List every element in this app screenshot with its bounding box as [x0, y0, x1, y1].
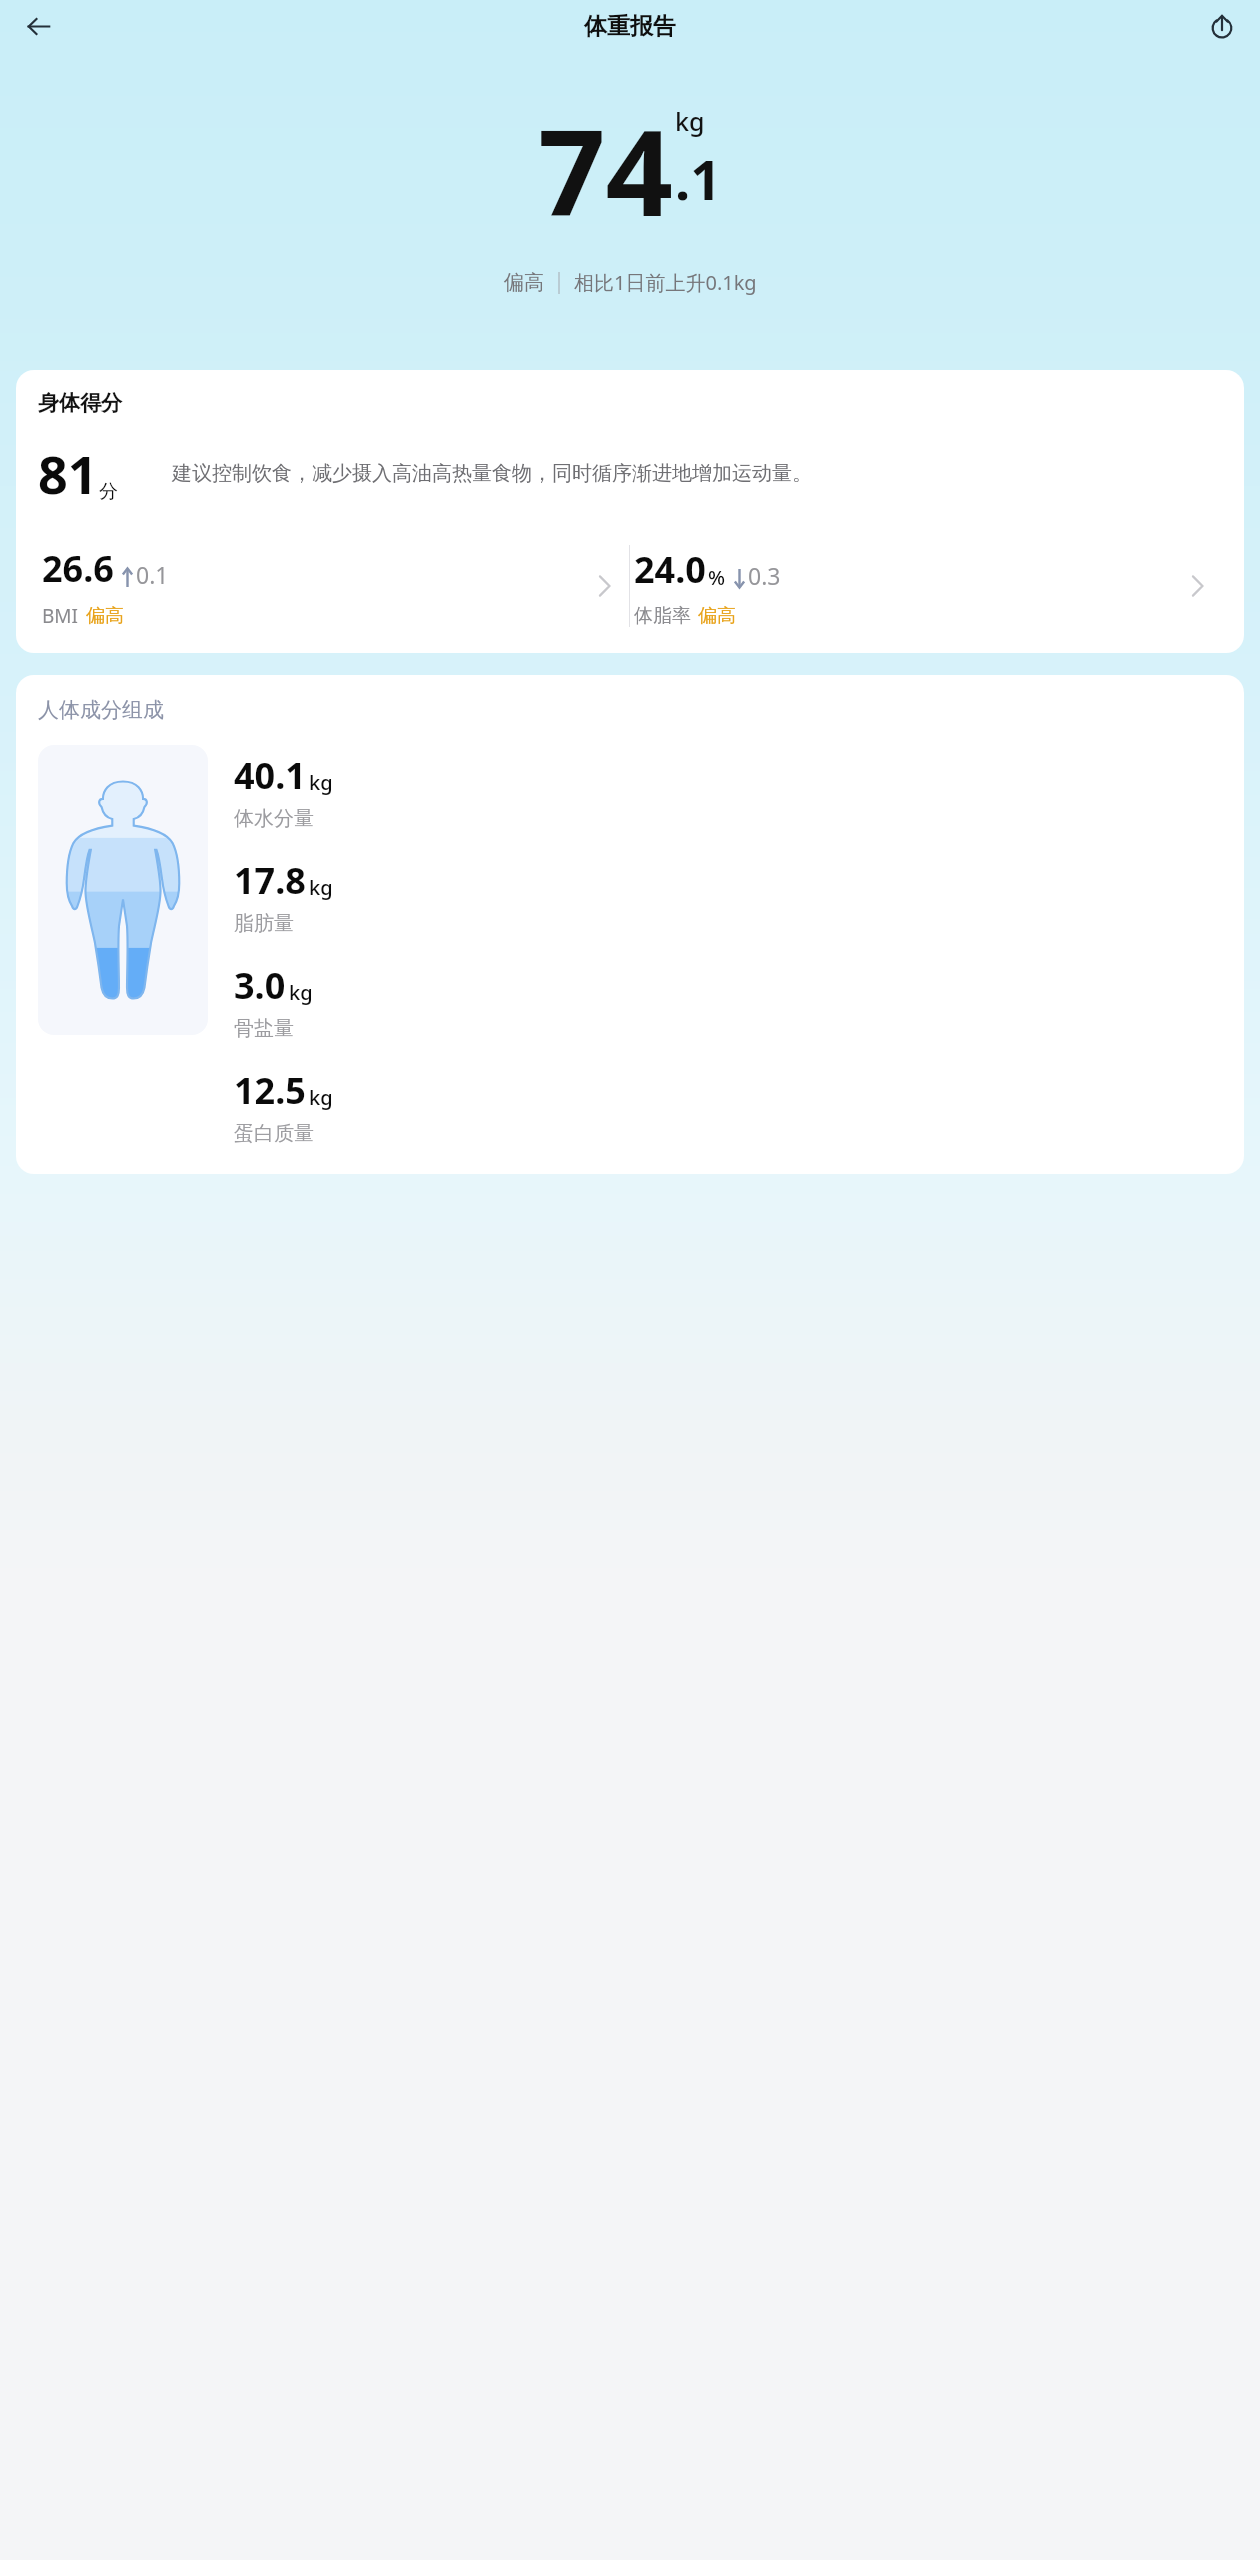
button[interactable]: 26.6: [38, 539, 629, 633]
staticText: 建议控制饮食，减少摄入高油高热量食物，同时循序渐进地增加运动量。: [172, 461, 812, 486]
staticText: 体重报告: [584, 12, 676, 41]
staticText: 81: [38, 438, 98, 509]
staticText: 12.5: [234, 1066, 306, 1115]
staticText: 骨盐量: [234, 1016, 294, 1041]
button[interactable]: 24.0: [630, 539, 1222, 633]
staticText: 偏高: [698, 604, 736, 628]
staticText: kg: [309, 874, 333, 901]
button[interactable]: Share: [1200, 4, 1244, 48]
staticText: 24.0: [634, 545, 706, 594]
staticText: 偏高: [86, 604, 124, 628]
staticText: 40.1: [234, 751, 306, 800]
staticText: 蛋白质量: [234, 1121, 314, 1146]
staticText: 分: [99, 480, 118, 504]
staticText: 体脂率: [634, 604, 691, 628]
staticText: %: [708, 564, 726, 591]
staticText: 0.3: [748, 560, 781, 591]
staticText: kg: [675, 104, 705, 138]
staticText: 26.6: [42, 544, 114, 593]
staticText: 偏高: [504, 270, 544, 295]
staticText: 体水分量: [234, 806, 314, 831]
staticText: 人体成分组成: [38, 697, 164, 723]
button[interactable]: 身体得分: [16, 370, 1244, 653]
staticText: 17.8: [234, 856, 306, 905]
staticText: 相比1日前上升0.1kg: [574, 269, 757, 296]
staticText: 身体得分: [38, 390, 122, 416]
staticText: BMI: [42, 603, 79, 629]
staticText: 脂肪量: [234, 911, 294, 936]
staticText: kg: [309, 769, 333, 796]
staticText: 3.0: [234, 961, 286, 1010]
staticText: .1: [675, 142, 722, 216]
staticText: 74: [538, 90, 673, 251]
staticText: kg: [309, 1084, 333, 1111]
staticText: 0.1: [136, 559, 169, 590]
button[interactable]: Back: [16, 4, 60, 48]
staticText: kg: [289, 979, 313, 1006]
